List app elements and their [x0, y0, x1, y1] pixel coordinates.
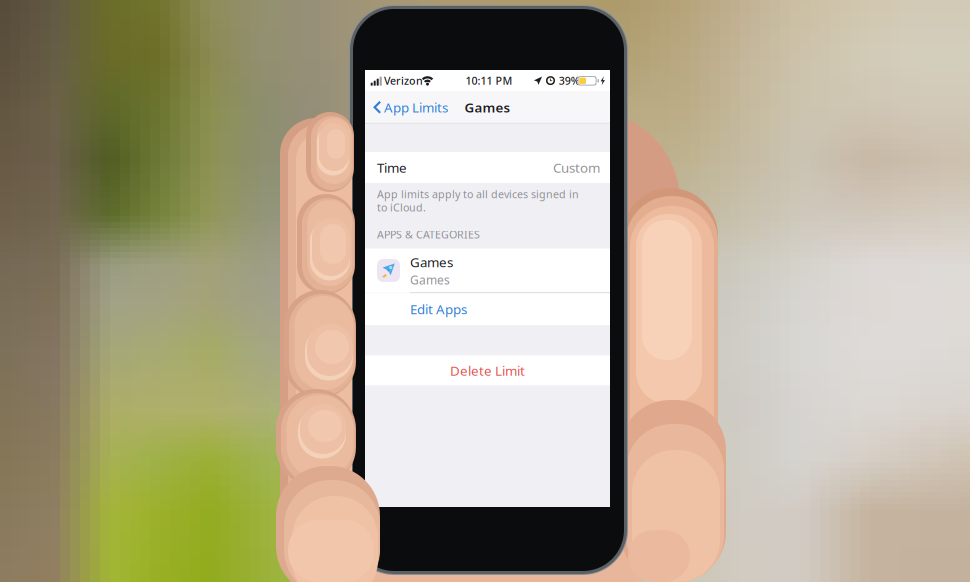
- staticText: Edit Apps: [410, 300, 467, 318]
- staticText: Games: [410, 272, 450, 288]
- staticText: Delete Limit: [450, 362, 525, 379]
- staticText: Games: [464, 98, 510, 116]
- button[interactable]: App Limits: [365, 91, 454, 123]
- staticText: APPS & CATEGORIES: [377, 227, 480, 241]
- staticText: 39%: [559, 73, 580, 88]
- button[interactable]: Time: [365, 152, 610, 183]
- button[interactable]: Edit Apps: [365, 293, 610, 325]
- staticText: Time: [377, 159, 407, 176]
- staticText: 10:11 PM: [465, 73, 512, 88]
- staticText: Verizon: [384, 73, 423, 88]
- button[interactable]: Delete Limit: [365, 355, 610, 386]
- staticText: App limits apply to all devices signed i…: [377, 187, 579, 201]
- staticText: to iCloud.: [377, 200, 426, 214]
- button[interactable]: Games: [365, 248, 610, 292]
- staticText: Custom: [553, 159, 600, 176]
- staticText: App Limits: [384, 98, 448, 116]
- staticText: Games: [410, 253, 453, 271]
